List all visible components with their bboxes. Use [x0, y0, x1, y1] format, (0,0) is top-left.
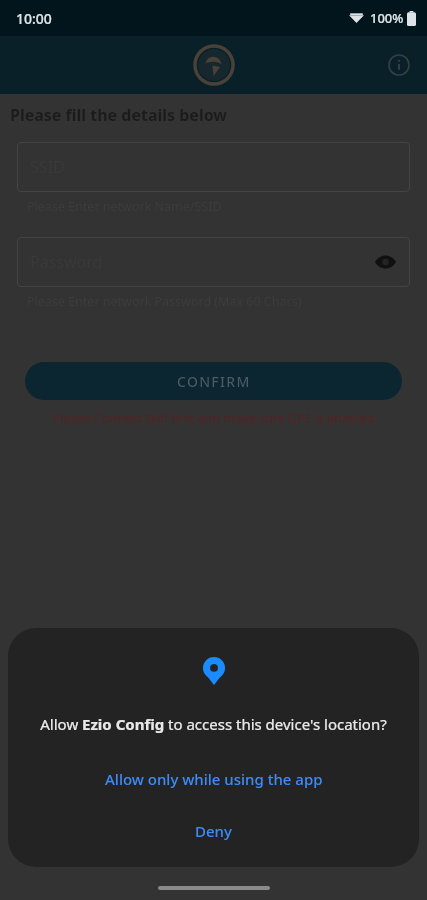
button[interactable]: Info	[379, 45, 419, 85]
button[interactable]: SSID	[17, 142, 410, 192]
staticText: Deny	[195, 821, 232, 841]
staticText: CONFIRM	[177, 372, 251, 391]
staticText: 10:00	[16, 9, 52, 28]
button[interactable]: Show password	[368, 245, 402, 279]
staticText: Please Connect Wifi first and make sure …	[26, 410, 401, 427]
button[interactable]: CONFIRM	[25, 362, 402, 400]
button[interactable]: Password	[17, 237, 410, 287]
button[interactable]: Deny	[8, 809, 419, 853]
staticText: 100%	[370, 9, 404, 27]
staticText: Please fill the details below	[10, 104, 228, 126]
staticText: Allow only while using the app	[105, 769, 323, 789]
button[interactable]: Allow only while using the app	[8, 757, 419, 801]
staticText: Allow Ezio Config to access this device'…	[24, 714, 403, 734]
